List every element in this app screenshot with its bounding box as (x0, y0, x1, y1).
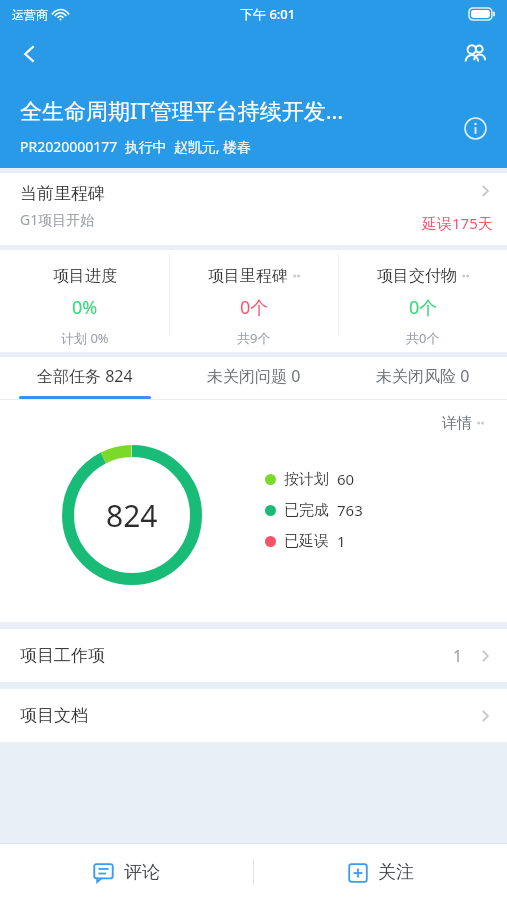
staticText: 按计划 (284, 470, 329, 489)
button[interactable]: 项目信息 (455, 108, 495, 148)
staticText: 1 (453, 645, 463, 667)
button[interactable]: 项目工作项 (0, 629, 507, 682)
staticText: 运营商 (12, 7, 48, 22)
staticText: 0个 (240, 295, 269, 320)
staticText: 824 (106, 495, 158, 536)
button[interactable]: 项目里程碑 (170, 250, 338, 347)
staticText: 项目里程碑 (208, 266, 288, 286)
staticText: 763 (337, 500, 363, 520)
staticText: 当前里程碑 (20, 183, 105, 204)
staticText: 60 (337, 469, 355, 489)
button[interactable]: 项目进度 (0, 250, 169, 347)
staticText: PR2020000177 执行中 赵凯元, 楼春 (20, 137, 252, 156)
staticText: 已完成 (284, 501, 329, 520)
staticText: 未关闭风险 0 (376, 365, 470, 387)
button[interactable]: 未关闭风险 0 (338, 357, 507, 399)
button[interactable]: 关注 (254, 844, 507, 900)
button[interactable]: 全部任务 824 (0, 357, 169, 399)
staticText: 0% (72, 295, 98, 320)
staticText: 关注 (378, 861, 414, 884)
staticText: G1项目开始 (20, 210, 95, 229)
button[interactable]: 未关闭问题 0 (169, 357, 338, 399)
staticText: 评论 (124, 861, 160, 884)
staticText: 项目进度 (53, 266, 117, 286)
staticText: 共0个 (406, 329, 440, 347)
button[interactable]: 详情 (438, 410, 489, 437)
staticText: 项目交付物 (377, 266, 457, 286)
staticText: 详情 (442, 414, 472, 433)
staticText: 项目工作项 (20, 645, 105, 666)
button[interactable]: 评论 (0, 844, 253, 900)
staticText: 下午 6:01 (240, 5, 296, 23)
staticText: 计划 0% (61, 329, 109, 347)
button[interactable]: 项目交付物 (339, 250, 507, 347)
staticText: 未关闭问题 0 (207, 365, 301, 387)
staticText: 项目文档 (20, 705, 88, 726)
staticText: 共9个 (237, 329, 271, 347)
staticText: 全部任务 824 (37, 365, 133, 387)
staticText: 已延误 (284, 532, 329, 551)
button[interactable]: 当前里程碑 (0, 173, 507, 245)
button[interactable]: 项目文档 (0, 689, 507, 742)
button[interactable]: 项目成员 (451, 30, 499, 78)
staticText: 全生命周期IT管理平台持续开发… (20, 95, 344, 125)
staticText: 0个 (409, 295, 438, 320)
staticText: 延误175天 (422, 213, 493, 233)
staticText: 1 (337, 531, 346, 551)
button[interactable]: 返回 (6, 30, 54, 78)
